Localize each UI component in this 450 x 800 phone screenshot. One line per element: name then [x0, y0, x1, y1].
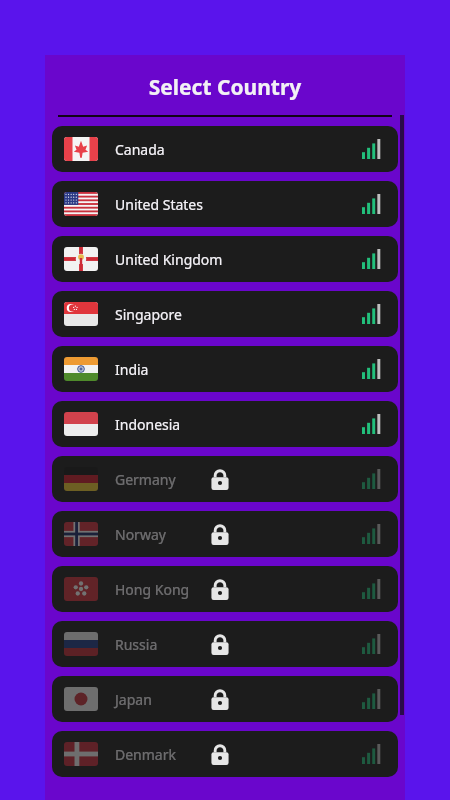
staticText: Singapore — [115, 305, 182, 324]
staticText: Russia — [115, 635, 158, 654]
button[interactable]: Russia — [52, 621, 398, 667]
other: Locked — [209, 688, 231, 710]
button[interactable]: Norway — [52, 511, 398, 557]
button[interactable]: Germany — [52, 456, 398, 502]
staticText: United States — [115, 195, 203, 214]
staticText: Indonesia — [115, 415, 181, 434]
other: Locked — [209, 468, 231, 490]
staticText: Canada — [115, 140, 165, 159]
other: Locked — [209, 743, 231, 765]
other: Locked — [209, 523, 231, 545]
staticText: Germany — [115, 470, 176, 489]
button[interactable]: United Kingdom — [52, 236, 398, 282]
button[interactable]: Indonesia — [52, 401, 398, 447]
staticText: Japan — [115, 690, 152, 709]
staticText: Denmark — [115, 745, 176, 764]
staticText: United Kingdom — [115, 250, 223, 269]
staticText: India — [115, 360, 149, 379]
staticText: Select Country — [45, 73, 405, 102]
other: Locked — [209, 578, 231, 600]
button[interactable]: Canada — [52, 126, 398, 172]
button[interactable]: Hong Kong — [52, 566, 398, 612]
staticText: Hong Kong — [115, 580, 190, 599]
button[interactable]: Japan — [52, 676, 398, 722]
button[interactable]: India — [52, 346, 398, 392]
button[interactable]: Denmark — [52, 731, 398, 777]
other: Locked — [209, 633, 231, 655]
button[interactable]: Singapore — [52, 291, 398, 337]
staticText: Norway — [115, 525, 166, 544]
button[interactable]: United States — [52, 181, 398, 227]
